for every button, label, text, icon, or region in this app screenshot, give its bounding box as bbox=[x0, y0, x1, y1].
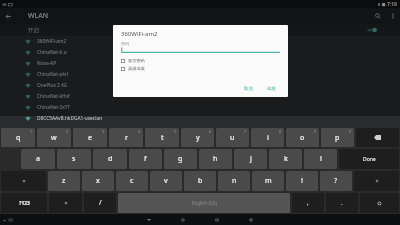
button[interactable]: , bbox=[292, 193, 324, 213]
staticText: c bbox=[130, 176, 134, 186]
staticText: WLAN bbox=[28, 11, 48, 21]
staticText: 3 bbox=[102, 129, 105, 134]
staticText: 360WiFi-am2 bbox=[121, 30, 158, 38]
staticText: ! bbox=[301, 176, 303, 186]
button[interactable]: 显示密码 bbox=[121, 58, 145, 63]
staticText: ?123 bbox=[19, 200, 30, 207]
button[interactable]: a bbox=[21, 149, 55, 169]
button[interactable]: D8CC5AAvB.hkDGA1-user.lan bbox=[0, 113, 400, 124]
staticText: 8 bbox=[279, 129, 282, 134]
button[interactable]: ?123 bbox=[1, 193, 47, 213]
button[interactable]: e bbox=[73, 128, 107, 147]
staticText: l bbox=[320, 154, 322, 164]
button[interactable]: b bbox=[184, 171, 216, 191]
staticText: 1 bbox=[30, 129, 33, 134]
button[interactable]: ChinaNet-5xTT bbox=[0, 102, 400, 113]
button[interactable]: Home bbox=[178, 215, 188, 225]
button[interactable]: 高级选项 bbox=[121, 66, 145, 71]
button[interactable]: Voice input bbox=[360, 193, 399, 213]
button[interactable]: ChinaNet-pkrl bbox=[0, 69, 400, 80]
staticText: a bbox=[36, 154, 41, 164]
button[interactable]: English (US) bbox=[118, 193, 290, 213]
button[interactable]: . bbox=[326, 193, 358, 213]
button[interactable]: OnePlus 2 4G bbox=[0, 80, 400, 91]
button[interactable]: ChinaNet-h.u bbox=[0, 47, 400, 58]
button[interactable]: u bbox=[216, 128, 249, 147]
button[interactable]: l bbox=[304, 149, 337, 169]
staticText: p bbox=[335, 133, 340, 143]
button[interactable]: 取消 bbox=[240, 84, 257, 94]
staticText: q bbox=[16, 133, 21, 143]
button[interactable]: Recent apps bbox=[212, 215, 222, 225]
button[interactable]: WLAN toggle bbox=[366, 25, 378, 35]
button[interactable]: d bbox=[93, 149, 127, 169]
button[interactable]: ? bbox=[320, 171, 352, 191]
button[interactable]: q bbox=[1, 128, 35, 147]
button[interactable]: c bbox=[116, 171, 148, 191]
button[interactable]: 连接 bbox=[263, 84, 280, 94]
staticText: z bbox=[62, 176, 66, 186]
button[interactable]: k bbox=[269, 149, 302, 169]
button[interactable]: More options bbox=[386, 9, 400, 23]
button[interactable]: ! bbox=[286, 171, 318, 191]
button[interactable]: ChinaNet-kHvf bbox=[0, 91, 400, 102]
staticText: t bbox=[161, 133, 164, 143]
staticText: b bbox=[198, 176, 203, 186]
staticText: 开启 bbox=[28, 27, 39, 34]
staticText: i bbox=[267, 133, 269, 143]
button[interactable]: Back bbox=[0, 8, 16, 24]
staticText: OnePlus 2 4G bbox=[37, 82, 68, 89]
button[interactable]: 360WiFi-am2 bbox=[0, 36, 400, 47]
staticText: ? bbox=[334, 176, 338, 186]
button[interactable]: v bbox=[150, 171, 182, 191]
button[interactable]: Shift right bbox=[354, 171, 399, 191]
staticText: y bbox=[196, 133, 200, 143]
button[interactable]: Nova-AP bbox=[0, 58, 400, 69]
staticText: 0 bbox=[349, 129, 352, 134]
staticText: x bbox=[96, 176, 100, 186]
staticText: v bbox=[164, 176, 168, 186]
button[interactable]: / bbox=[84, 193, 116, 213]
staticText: r bbox=[125, 133, 128, 143]
staticText: w bbox=[51, 133, 57, 143]
button[interactable]: h bbox=[199, 149, 232, 169]
button[interactable]: g bbox=[164, 149, 197, 169]
staticText: f bbox=[144, 154, 147, 164]
button[interactable]: n bbox=[218, 171, 250, 191]
button[interactable]: Emoji bbox=[49, 193, 82, 213]
staticText: 7 bbox=[244, 129, 247, 134]
button[interactable]: j bbox=[234, 149, 267, 169]
staticText: 2 bbox=[66, 129, 69, 134]
button[interactable]: Power bbox=[246, 215, 256, 225]
staticText: Nova-AP bbox=[37, 60, 57, 67]
staticText: ChinaNet-kHvf bbox=[37, 93, 70, 100]
staticText: . bbox=[341, 199, 343, 207]
button[interactable]: w bbox=[37, 128, 71, 147]
button[interactable]: Backspace bbox=[356, 128, 399, 147]
button[interactable]: f bbox=[129, 149, 162, 169]
staticText: u bbox=[230, 133, 235, 143]
staticText: D8CC5AAvB.hkDGA1-user.lan bbox=[37, 115, 103, 122]
button[interactable]: o bbox=[286, 128, 319, 147]
staticText: ChinaNet-pkrl bbox=[37, 71, 69, 78]
button[interactable]: p bbox=[321, 128, 354, 147]
staticText: 4 bbox=[138, 129, 141, 134]
button[interactable]: z bbox=[48, 171, 80, 191]
staticText: j bbox=[250, 154, 252, 164]
staticText: 7:19 bbox=[387, 1, 397, 8]
button[interactable]: r bbox=[109, 128, 143, 147]
button[interactable]: Search bbox=[370, 8, 386, 24]
button[interactable]: m bbox=[252, 171, 284, 191]
button[interactable]: Shift bbox=[1, 171, 46, 191]
staticText: 显示密码 bbox=[128, 58, 145, 63]
button[interactable]: s bbox=[57, 149, 91, 169]
button[interactable]: x bbox=[82, 171, 114, 191]
staticText: 9 bbox=[314, 129, 317, 134]
staticText: m bbox=[265, 176, 272, 186]
button[interactable]: y bbox=[181, 128, 214, 147]
button[interactable]: t bbox=[145, 128, 179, 147]
button[interactable]: Done bbox=[339, 149, 399, 169]
staticText: Done bbox=[363, 156, 376, 163]
button[interactable]: Back bbox=[144, 215, 154, 225]
button[interactable]: i bbox=[251, 128, 284, 147]
